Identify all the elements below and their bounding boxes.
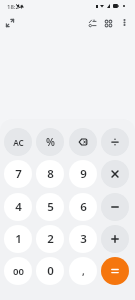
- button[interactable]: Unit converter: [83, 14, 101, 32]
- button[interactable]: More options: [116, 14, 133, 31]
- button[interactable]: [69, 128, 97, 156]
- button[interactable]: 2: [36, 225, 64, 253]
- staticText: 00: [13, 265, 24, 278]
- button[interactable]: 9: [69, 160, 97, 188]
- button[interactable]: 8: [36, 160, 64, 188]
- staticText: 7: [15, 166, 22, 182]
- button[interactable]: 4: [4, 193, 32, 221]
- button[interactable]: 3: [69, 225, 97, 253]
- staticText: 4: [15, 199, 22, 215]
- staticText: ,: [82, 264, 85, 278]
- button[interactable]: Keypad layout: [99, 14, 117, 32]
- staticText: 6: [80, 199, 87, 215]
- staticText: 3: [80, 231, 87, 247]
- button[interactable]: Expand: [1, 14, 19, 32]
- staticText: 18:24: [7, 3, 23, 11]
- button[interactable]: 6: [69, 193, 97, 221]
- button[interactable]: [101, 225, 129, 253]
- staticText: 8: [47, 166, 54, 182]
- button[interactable]: AC: [4, 128, 32, 156]
- button[interactable]: 00: [4, 257, 32, 285]
- staticText: 9: [80, 166, 87, 182]
- button[interactable]: [101, 160, 129, 188]
- button[interactable]: %: [36, 128, 64, 156]
- staticText: 0: [47, 263, 54, 279]
- button[interactable]: 5: [36, 193, 64, 221]
- button[interactable]: [101, 193, 129, 221]
- button[interactable]: [101, 128, 129, 156]
- staticText: 1: [15, 231, 22, 247]
- staticText: 2: [47, 231, 54, 247]
- staticText: %: [46, 135, 55, 149]
- staticText: AC: [13, 137, 24, 148]
- button[interactable]: ,: [69, 257, 97, 285]
- button[interactable]: [101, 257, 129, 285]
- button[interactable]: 0: [36, 257, 64, 285]
- button[interactable]: 1: [4, 225, 32, 253]
- button[interactable]: 7: [4, 160, 32, 188]
- staticText: 5: [47, 199, 54, 215]
